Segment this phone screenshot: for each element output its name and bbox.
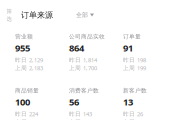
staticText: 864	[69, 42, 84, 54]
staticText: 昨日	[69, 110, 81, 118]
staticText: 2,129	[29, 56, 43, 64]
staticText: 昨日	[69, 56, 81, 64]
staticText: 昨日	[15, 56, 27, 64]
staticText: 订单量	[123, 33, 141, 40]
staticText: 全部	[76, 11, 88, 19]
staticText: 公司商品实收	[69, 33, 105, 40]
staticText: 上周	[123, 64, 135, 72]
staticText: 新客户数	[123, 87, 147, 94]
staticText: 91	[123, 42, 133, 54]
staticText: 26	[137, 110, 143, 118]
staticText: 143	[83, 110, 92, 118]
staticText: 13	[123, 96, 133, 108]
staticText: 昨日	[15, 110, 27, 118]
staticText: 100	[15, 96, 30, 108]
staticText: 1,700	[83, 64, 97, 72]
staticText: 2,183	[29, 64, 43, 72]
staticText: 营业额	[15, 33, 33, 40]
staticText: 昨日	[123, 110, 135, 118]
staticText: 198	[137, 56, 146, 64]
button[interactable]: 筛选	[3, 8, 15, 22]
staticText: 上周	[15, 64, 27, 72]
staticText: 昨日	[123, 56, 135, 64]
staticText: 选	[6, 15, 11, 22]
staticText: 224	[29, 110, 38, 118]
staticText: 上周	[69, 64, 81, 72]
staticText: 消费客户数	[69, 87, 99, 94]
button[interactable]: 全部	[53, 11, 94, 19]
staticText: 955	[15, 42, 30, 54]
staticText: 1,814	[83, 56, 97, 64]
staticText: 上周	[69, 118, 81, 120]
staticText: 上周	[15, 118, 27, 120]
staticText: 56	[69, 96, 79, 108]
staticText: 199	[137, 64, 146, 72]
staticText: 商品销量	[15, 87, 39, 94]
staticText: 上周	[123, 118, 135, 120]
staticText: 筛	[6, 8, 11, 14]
staticText: 订单来源	[21, 10, 53, 20]
